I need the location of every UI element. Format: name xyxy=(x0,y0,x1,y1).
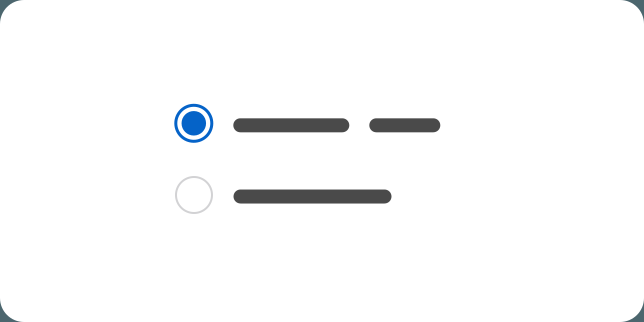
button[interactable]: First option, selected xyxy=(174,104,441,143)
button[interactable]: Second option xyxy=(174,175,391,214)
